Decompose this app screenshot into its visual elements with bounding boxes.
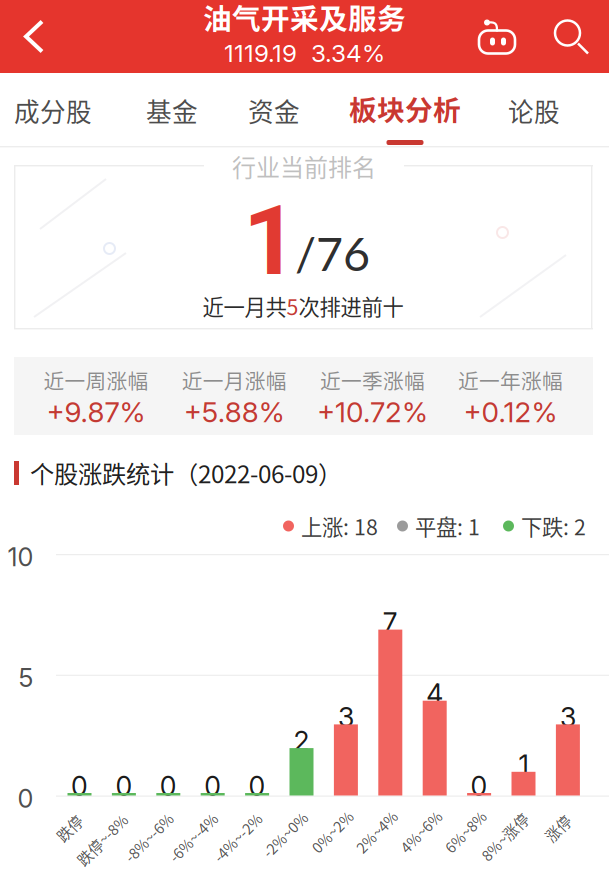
staticText: 4: [426, 678, 443, 710]
staticText: 7: [383, 606, 398, 639]
staticText: 0%~2%: [306, 821, 358, 842]
button[interactable]: 资金: [224, 73, 324, 147]
staticText: 个股涨跌统计（2022-06-09）: [30, 455, 342, 490]
staticText: 次排进前十: [298, 291, 403, 321]
staticText: 0: [471, 770, 488, 802]
staticText: 跌停: [54, 817, 84, 838]
button[interactable]: Search: [537, 0, 609, 73]
staticText: 10: [7, 542, 33, 572]
button[interactable]: 成分股: [0, 73, 109, 147]
staticText: +0.12%: [464, 395, 558, 429]
staticText: 跌停~-8%: [70, 829, 135, 850]
staticText: 4%~6%: [395, 821, 447, 842]
staticText: 近一季涨幅: [320, 365, 425, 395]
staticText: 0: [71, 770, 88, 802]
staticText: -2%~0%: [257, 824, 314, 845]
staticText: 涨停: [543, 817, 573, 838]
button[interactable]: 论股: [484, 73, 584, 147]
staticText: /76: [295, 225, 370, 281]
staticText: 2: [293, 725, 309, 757]
staticText: 行业当前排名: [232, 149, 376, 183]
staticText: 平盘: 1: [415, 511, 480, 541]
staticText: 论股: [508, 92, 560, 129]
staticText: -6%~-4%: [162, 827, 224, 848]
staticText: -4%~-2%: [207, 827, 269, 848]
staticText: 近一月共: [202, 291, 286, 321]
button[interactable]: Back: [0, 0, 68, 73]
staticText: 1: [243, 185, 298, 297]
staticText: 0: [115, 770, 132, 802]
staticText: 1: [518, 749, 528, 781]
staticText: 1119.19 3.34%: [224, 38, 385, 68]
staticText: 近一年涨幅: [458, 365, 563, 395]
staticText: 3: [338, 701, 354, 734]
staticText: 上涨: 18: [301, 511, 378, 541]
staticText: 成分股: [14, 92, 92, 129]
staticText: 资金: [248, 92, 300, 129]
staticText: 2%~4%: [351, 821, 403, 842]
staticText: 近一周涨幅: [43, 365, 148, 395]
staticText: 5: [286, 291, 298, 321]
staticText: +9.87%: [46, 395, 145, 429]
staticText: 5: [18, 662, 33, 693]
button[interactable]: 板块分析: [339, 73, 471, 147]
staticText: 0: [204, 770, 221, 802]
staticText: 0: [160, 770, 177, 802]
button[interactable]: 基金: [122, 73, 222, 147]
staticText: 6%~8%: [440, 821, 492, 842]
staticText: -8%~-6%: [118, 827, 180, 848]
staticText: 3: [560, 701, 576, 734]
staticText: +5.88%: [184, 395, 285, 429]
staticText: 8%~涨停: [475, 826, 535, 847]
staticText: +10.72%: [317, 395, 428, 429]
staticText: 油气开采及服务: [203, 0, 406, 38]
staticText: 基金: [146, 92, 198, 129]
staticText: 下跌: 2: [521, 511, 586, 541]
staticText: 0: [17, 783, 33, 814]
staticText: 近一月涨幅: [182, 365, 287, 395]
staticText: 0: [249, 770, 266, 802]
button[interactable]: AI assistant: [461, 0, 533, 73]
staticText: 板块分析: [349, 88, 461, 129]
